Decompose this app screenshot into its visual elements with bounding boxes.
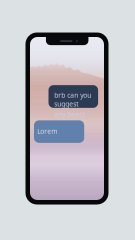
button[interactable]: Lorem [34, 120, 84, 143]
staticText: Lorem [37, 127, 57, 136]
button[interactable]: brb can you suggest [48, 85, 98, 108]
staticText: brb can you suggest [54, 91, 91, 108]
staticText: any beers to buy ... [54, 110, 85, 128]
